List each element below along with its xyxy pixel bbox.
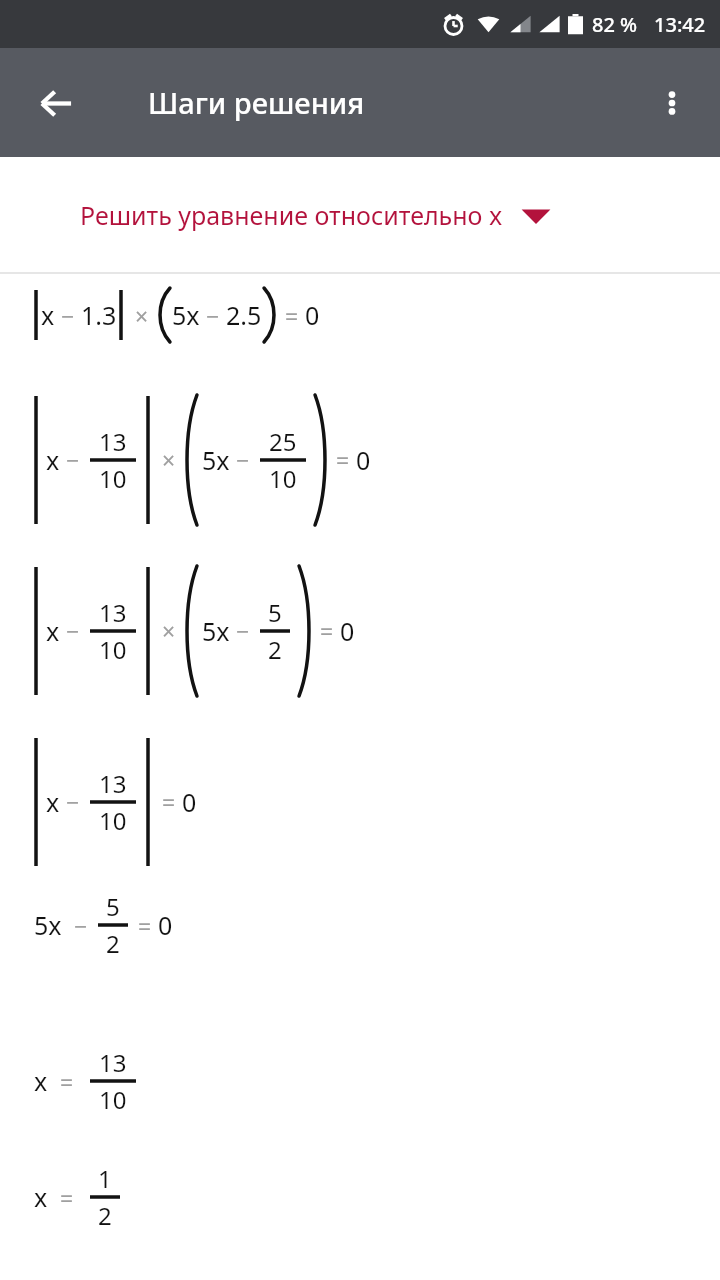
staticText: = (132, 910, 158, 941)
staticText: x (34, 1064, 48, 1098)
staticText: 10 (99, 1083, 127, 1116)
staticText: 5x (34, 908, 62, 942)
staticText: = (48, 1066, 86, 1097)
staticText: 0 (182, 785, 197, 819)
staticText: 2.5 (226, 298, 262, 332)
staticText: 10 (99, 462, 127, 495)
staticText: 0 (356, 443, 371, 477)
staticText: x (46, 443, 60, 477)
staticText: − (60, 786, 86, 817)
staticText: = (48, 1182, 86, 1213)
staticText: 0 (158, 908, 173, 942)
staticText: 13 (99, 596, 127, 629)
staticText: 82 % (592, 11, 638, 38)
staticText: 10 (99, 633, 127, 666)
staticText: 5 (106, 890, 120, 923)
button[interactable]: Решить уравнение относительно x (0, 157, 720, 272)
staticText: 2 (98, 1199, 112, 1232)
staticText: 5x (202, 614, 230, 648)
staticText: − (230, 615, 256, 646)
staticText: − (200, 300, 226, 331)
staticText: 13 (99, 767, 127, 800)
staticText: x (46, 785, 60, 819)
staticText: = (279, 300, 305, 331)
staticText: 5x (172, 298, 200, 332)
staticText: × (150, 615, 182, 646)
staticText: 0 (305, 298, 320, 332)
staticText: × (150, 444, 182, 475)
staticText: − (60, 444, 86, 475)
staticText: Шаги решения (148, 83, 365, 122)
staticText: 5 (268, 596, 282, 629)
staticText: 1 (98, 1162, 112, 1195)
staticText: 10 (269, 462, 297, 495)
staticText: − (55, 300, 81, 331)
staticText: × (123, 300, 155, 331)
staticText: = (314, 615, 340, 646)
staticText: 13 (99, 1046, 127, 1079)
staticText: 5x (202, 443, 230, 477)
staticText: 13:42 (654, 11, 706, 38)
staticText: = (330, 444, 356, 475)
staticText: x (41, 298, 55, 332)
staticText: x (34, 1180, 48, 1214)
staticText: x (46, 614, 60, 648)
button[interactable]: Back (26, 73, 86, 133)
staticText: − (62, 910, 94, 941)
staticText: = (150, 786, 182, 817)
staticText: 2 (106, 927, 120, 960)
staticText: 13 (99, 425, 127, 458)
staticText: − (230, 444, 256, 475)
staticText: 25 (269, 425, 297, 458)
staticText: 1.3 (81, 298, 117, 332)
staticText: − (60, 615, 86, 646)
staticText: 0 (340, 614, 355, 648)
button[interactable]: More options (642, 73, 702, 133)
staticText: 2 (268, 633, 282, 666)
staticText: 10 (99, 804, 127, 837)
staticText: Решить уравнение относительно x (80, 198, 503, 232)
